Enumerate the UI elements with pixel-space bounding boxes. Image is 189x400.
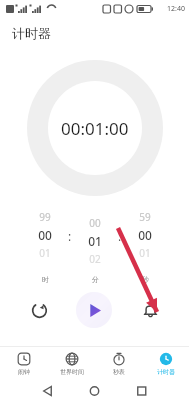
- staticText: 02: [89, 252, 101, 266]
- button[interactable]: Reset: [22, 293, 56, 327]
- staticText: 01: [88, 233, 102, 249]
- button[interactable]: 59: [128, 210, 162, 286]
- staticText: 时: [42, 275, 49, 284]
- staticText: :: [68, 228, 72, 244]
- staticText: 计时器: [157, 368, 175, 376]
- button[interactable]: 99: [28, 210, 62, 286]
- staticText: 世界时间: [60, 368, 84, 376]
- staticText: 01: [39, 246, 51, 260]
- button[interactable]: 世界时间: [48, 346, 95, 382]
- button[interactable]: 计时器: [142, 346, 189, 382]
- staticText: 秒表: [113, 368, 125, 376]
- button[interactable]: Start: [76, 292, 112, 328]
- staticText: 12:40: [167, 4, 185, 14]
- staticText: 00: [89, 216, 101, 230]
- staticText: 00:01:00: [61, 117, 129, 140]
- staticText: 59: [139, 210, 151, 224]
- staticText: 分: [92, 275, 99, 284]
- button[interactable]: 闹钟: [0, 346, 48, 382]
- staticText: :: [118, 228, 122, 244]
- staticText: 01: [139, 246, 151, 260]
- staticText: 99: [39, 210, 51, 224]
- staticText: 闹钟: [18, 368, 30, 376]
- button[interactable]: Ringtone: [133, 293, 167, 327]
- staticText: 00: [38, 227, 52, 243]
- button[interactable]: 00: [78, 210, 112, 286]
- staticText: 计时器: [12, 25, 51, 41]
- staticText: 00: [138, 227, 152, 243]
- button[interactable]: 秒表: [95, 346, 142, 382]
- staticText: 秒: [142, 275, 149, 284]
